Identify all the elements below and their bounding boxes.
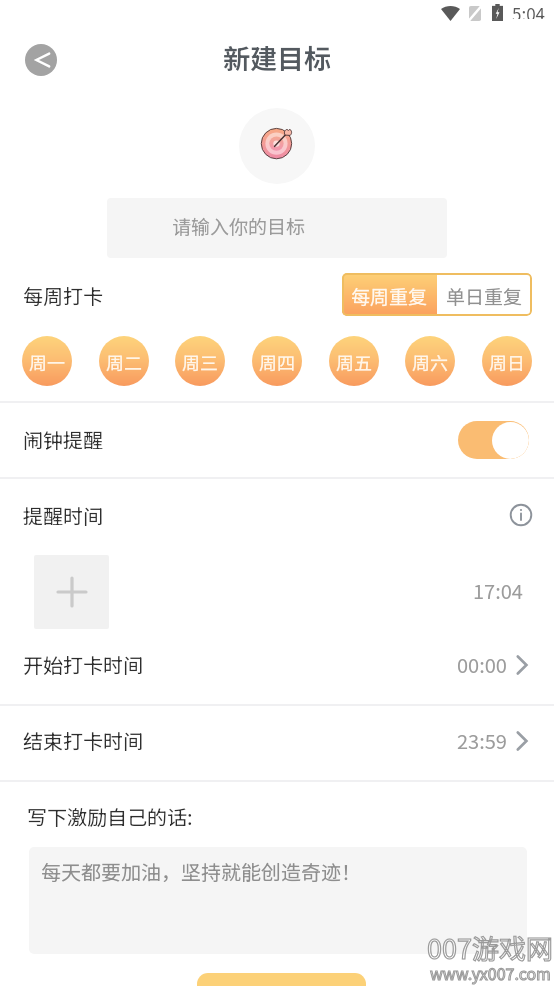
- staticText: 23:59: [457, 726, 507, 755]
- staticText: 5:04: [512, 1, 546, 19]
- button[interactable]: 结束打卡时间: [0, 703, 554, 778]
- staticText: 每天都要加油，坚持就能创造奇迹！: [41, 857, 361, 886]
- button[interactable]: Add reminder time: [34, 555, 109, 629]
- staticText: 每周重复: [351, 282, 428, 310]
- button[interactable]: 开始打卡时间: [0, 627, 554, 702]
- staticText: 00:00: [457, 650, 507, 679]
- button[interactable]: 单日重复: [437, 273, 532, 316]
- staticText: 周三: [182, 349, 218, 375]
- button[interactable]: 周日: [482, 336, 532, 386]
- button[interactable]: 周二: [99, 336, 149, 386]
- button[interactable]: 周一: [22, 336, 72, 386]
- button[interactable]: 每周重复: [342, 273, 437, 316]
- staticText: 请输入你的目标: [172, 212, 306, 240]
- button[interactable]: 周五: [329, 336, 379, 386]
- staticText: 007游戏网: [427, 928, 553, 967]
- staticText: 周日: [489, 349, 525, 375]
- staticText: 17:04: [473, 576, 523, 605]
- button[interactable]: 每天都要加油，坚持就能创造奇迹！: [29, 847, 527, 954]
- staticText: 开始打卡时间: [23, 650, 143, 679]
- staticText: 结束打卡时间: [23, 726, 143, 755]
- button[interactable]: Alarm reminder toggle: [458, 421, 529, 459]
- staticText: 提醒时间: [23, 501, 103, 530]
- staticText: 写下激励自己的话:: [27, 802, 193, 831]
- button[interactable]: 请输入你的目标: [107, 198, 447, 258]
- button[interactable]: Info: [509, 503, 532, 526]
- button[interactable]: 周三: [175, 336, 225, 386]
- staticText: 周四: [259, 349, 295, 375]
- staticText: 周二: [106, 349, 142, 375]
- button[interactable]: 周六: [405, 336, 455, 386]
- staticText: 周六: [412, 349, 448, 375]
- staticText: 闹钟提醒: [23, 425, 103, 454]
- staticText: 周一: [29, 349, 65, 375]
- staticText: 单日重复: [446, 282, 523, 310]
- staticText: 周五: [336, 349, 372, 375]
- button[interactable]: 保存: [197, 973, 366, 986]
- button[interactable]: 周四: [252, 336, 302, 386]
- staticText: 每周打卡: [23, 281, 103, 310]
- staticText: 新建目标: [223, 38, 331, 74]
- staticText: www.yx007.com: [430, 961, 551, 984]
- button[interactable]: Back: [25, 44, 57, 76]
